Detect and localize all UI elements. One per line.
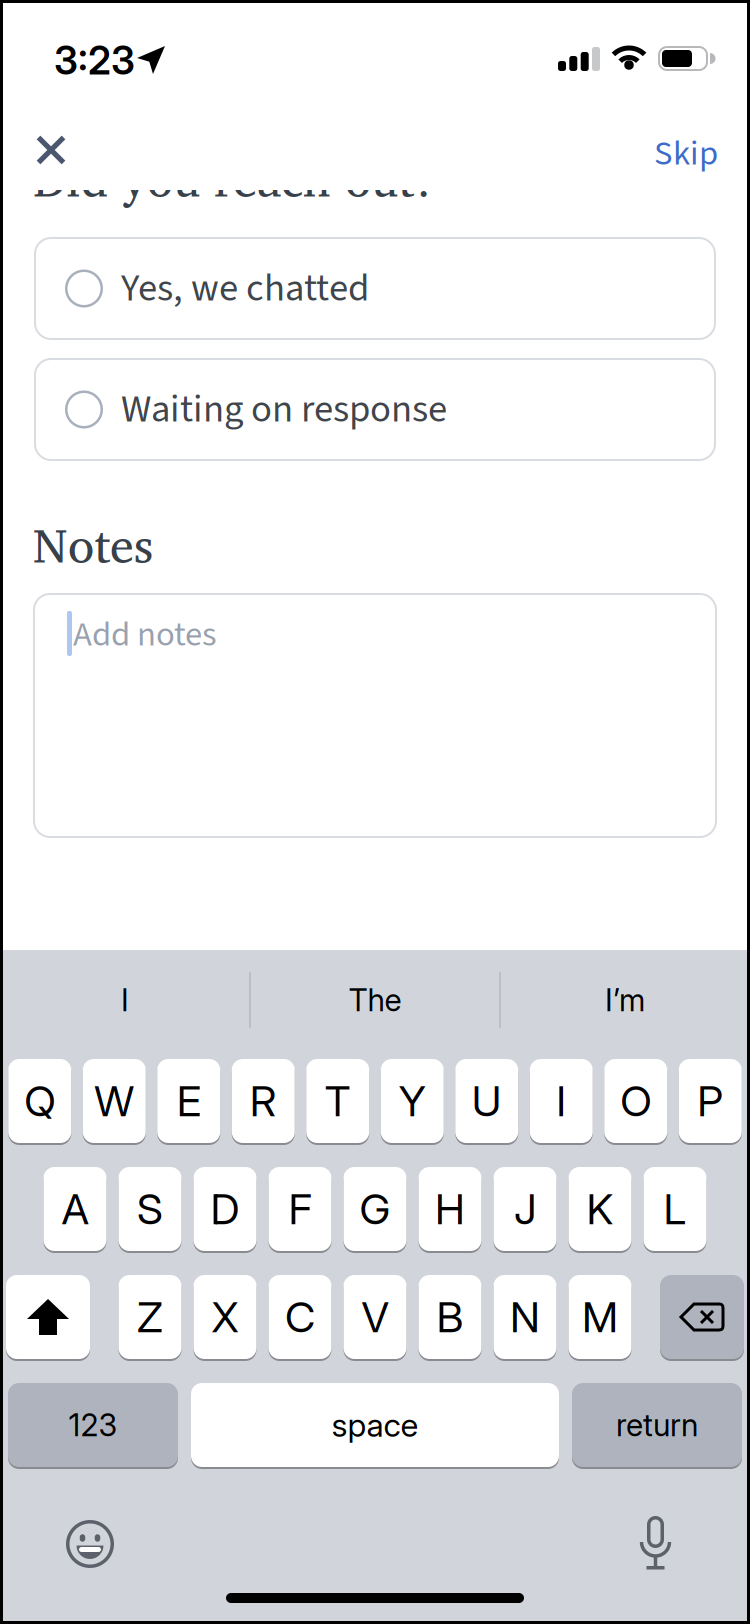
staticText: Did you reach out? <box>33 139 437 217</box>
staticText: D <box>210 1184 239 1234</box>
button[interactable]: D <box>193 1166 256 1252</box>
button[interactable]: L <box>643 1166 706 1252</box>
button[interactable]: H <box>418 1166 481 1252</box>
button[interactable]: O <box>604 1058 667 1144</box>
staticText: U <box>472 1076 502 1126</box>
button[interactable]: Close <box>25 124 77 176</box>
staticText: return <box>616 1406 698 1443</box>
button[interactable]: P <box>679 1058 742 1144</box>
staticText: A <box>61 1184 88 1234</box>
button[interactable]: The <box>250 950 500 1058</box>
staticText: C <box>285 1292 315 1342</box>
button[interactable]: Y <box>381 1058 444 1144</box>
staticText: I <box>556 1076 566 1126</box>
button[interactable]: S <box>118 1166 181 1252</box>
staticText: I <box>121 981 129 1018</box>
staticText: E <box>177 1076 201 1126</box>
button[interactable]: Shift <box>6 1274 90 1360</box>
staticText: R <box>250 1076 277 1126</box>
button[interactable]: F <box>268 1166 331 1252</box>
staticText: Y <box>399 1076 426 1126</box>
staticText: N <box>510 1292 540 1342</box>
staticText: L <box>663 1184 686 1234</box>
staticText: Notes <box>33 505 153 583</box>
button[interactable]: E <box>157 1058 220 1144</box>
button[interactable]: U <box>455 1058 518 1144</box>
button[interactable]: J <box>493 1166 556 1252</box>
staticText: Yes, we chatted <box>121 261 369 316</box>
staticText: S <box>137 1184 163 1234</box>
staticText: T <box>325 1076 351 1126</box>
staticText: Z <box>137 1292 163 1342</box>
button[interactable]: C <box>268 1274 331 1360</box>
button[interactable]: Z <box>118 1274 181 1360</box>
button[interactable]: Skip <box>654 129 718 178</box>
staticText: Add notes <box>73 610 217 659</box>
button[interactable]: T <box>306 1058 369 1144</box>
staticText: Waiting on response <box>121 382 447 437</box>
staticText: 123 <box>68 1406 117 1443</box>
staticText: V <box>361 1292 388 1342</box>
button[interactable]: 123 <box>8 1382 178 1468</box>
button[interactable]: I’m <box>500 950 750 1058</box>
button[interactable]: A <box>43 1166 106 1252</box>
staticText: X <box>211 1292 238 1342</box>
staticText: F <box>288 1184 311 1234</box>
staticText: K <box>586 1184 613 1234</box>
button[interactable]: K <box>568 1166 631 1252</box>
staticText: Q <box>24 1076 55 1126</box>
staticText: M <box>582 1292 618 1342</box>
button[interactable]: R <box>232 1058 295 1144</box>
staticText: space <box>331 1406 418 1444</box>
staticText: G <box>359 1184 390 1234</box>
button[interactable]: M <box>568 1274 631 1360</box>
button[interactable]: X <box>193 1274 256 1360</box>
staticText: J <box>514 1184 536 1234</box>
button[interactable]: Waiting on response <box>34 358 716 461</box>
button[interactable]: Dictate <box>638 1516 673 1570</box>
button[interactable]: N <box>493 1274 556 1360</box>
staticText: P <box>697 1076 723 1126</box>
button[interactable]: Delete <box>660 1274 744 1360</box>
button[interactable]: I <box>0 950 250 1058</box>
button[interactable]: Emoji <box>66 1520 114 1568</box>
staticText: W <box>94 1076 134 1126</box>
button[interactable]: Add notes <box>33 593 717 838</box>
button[interactable]: space <box>191 1382 559 1468</box>
button[interactable]: B <box>418 1274 481 1360</box>
button[interactable]: W <box>83 1058 146 1144</box>
staticText: H <box>435 1184 465 1234</box>
staticText: 3:23 <box>54 37 135 84</box>
button[interactable]: Yes, we chatted <box>34 237 716 340</box>
staticText: Skip <box>654 129 718 178</box>
staticText: The <box>348 981 401 1018</box>
staticText: I’m <box>605 981 645 1018</box>
button[interactable]: V <box>343 1274 406 1360</box>
staticText: B <box>436 1292 463 1342</box>
button[interactable]: G <box>343 1166 406 1252</box>
button[interactable]: Q <box>8 1058 71 1144</box>
button[interactable]: I <box>530 1058 593 1144</box>
button[interactable]: return <box>572 1382 742 1468</box>
staticText: O <box>620 1076 651 1126</box>
